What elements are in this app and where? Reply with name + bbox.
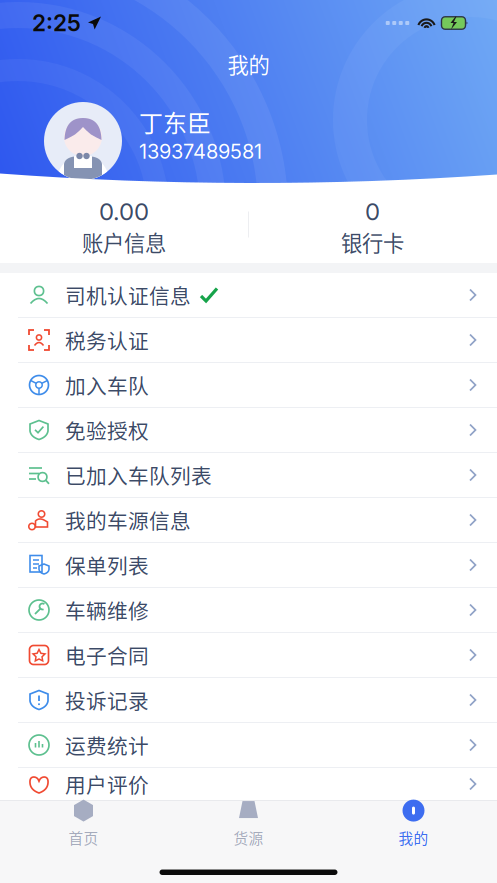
staticText: 车辆维修 — [65, 595, 149, 625]
staticText: 账户信息 — [82, 227, 166, 257]
staticText: 我的车源信息 — [65, 505, 191, 535]
button[interactable]: 已加入车队列表 — [0, 453, 497, 498]
staticText: 保单列表 — [65, 550, 149, 580]
button[interactable]: 0 — [248, 186, 497, 263]
staticText: 2:25 — [32, 9, 81, 37]
button[interactable]: 0.00 — [0, 186, 248, 263]
staticText: 货源 — [233, 827, 263, 848]
staticText: 用户评价 — [65, 769, 149, 799]
button[interactable]: 丁东臣 — [0, 102, 497, 180]
staticText: 首页 — [68, 827, 98, 848]
staticText: 免验授权 — [65, 415, 149, 445]
staticText: 税务认证 — [65, 325, 149, 355]
button[interactable]: 司机认证信息 — [0, 273, 497, 318]
button[interactable]: 投诉记录 — [0, 678, 497, 723]
staticText: 丁东臣 — [139, 104, 211, 139]
staticText: 运费统计 — [65, 730, 149, 760]
button[interactable]: 我的 — [331, 801, 496, 847]
staticText: 0 — [365, 197, 380, 226]
button[interactable]: 首页 — [1, 801, 166, 847]
button[interactable]: 货源 — [166, 801, 331, 847]
button[interactable]: 用户评价 — [0, 768, 497, 800]
staticText: 加入车队 — [65, 370, 149, 400]
staticText: 13937489581 — [139, 139, 262, 163]
staticText: 0.00 — [99, 197, 149, 226]
button[interactable]: 车辆维修 — [0, 588, 497, 633]
staticText: 电子合同 — [65, 640, 149, 670]
button[interactable]: 免验授权 — [0, 408, 497, 453]
button[interactable]: 运费统计 — [0, 723, 497, 768]
button[interactable]: 电子合同 — [0, 633, 497, 678]
button[interactable]: 加入车队 — [0, 363, 497, 408]
staticText: 我的 — [227, 49, 269, 79]
button[interactable]: 保单列表 — [0, 543, 497, 588]
button[interactable]: 我的车源信息 — [0, 498, 497, 543]
staticText: 投诉记录 — [65, 685, 149, 715]
staticText: 银行卡 — [341, 227, 404, 257]
staticText: 已加入车队列表 — [65, 460, 212, 490]
staticText: 司机认证信息 — [65, 280, 191, 310]
button[interactable]: 税务认证 — [0, 318, 497, 363]
staticText: 我的 — [398, 827, 428, 848]
